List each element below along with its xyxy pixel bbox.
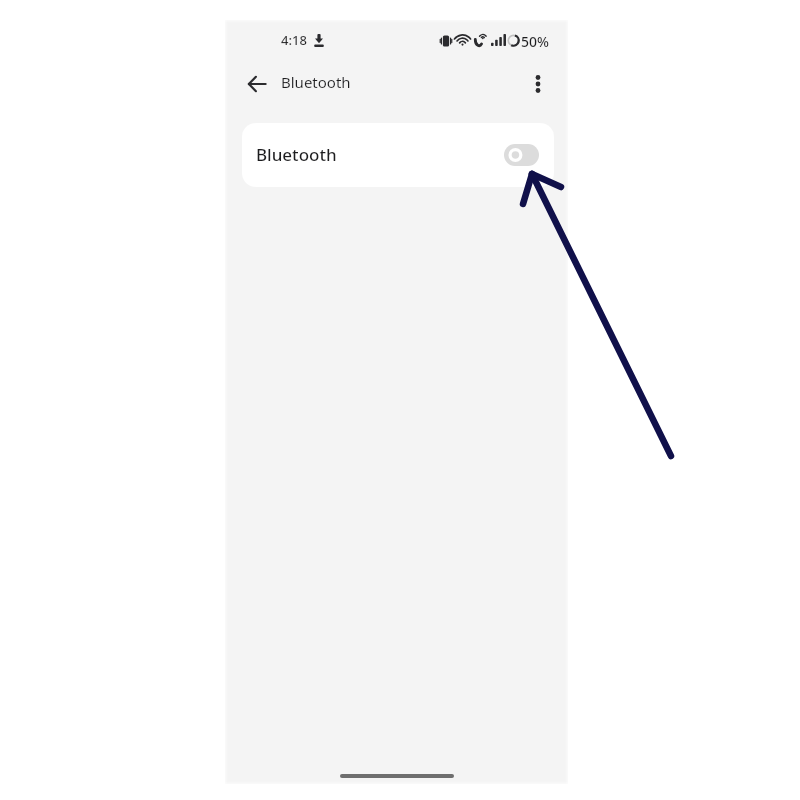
other: Battery 50 percent [507,34,520,47]
other: Signal strength [491,34,506,46]
button[interactable]: Bluetooth [242,123,554,187]
other: Wi-Fi calling [474,33,487,47]
button[interactable]: More options [518,64,558,104]
button[interactable]: Bluetooth toggle, off [504,144,539,166]
staticText: 4:18 [281,31,307,49]
staticText: Bluetooth [281,72,351,92]
other: Wi-Fi [455,34,470,46]
button[interactable]: Back [237,64,277,104]
staticText: Bluetooth [256,143,337,166]
other: Vibrate [440,32,452,50]
staticText: 50% [521,32,549,51]
